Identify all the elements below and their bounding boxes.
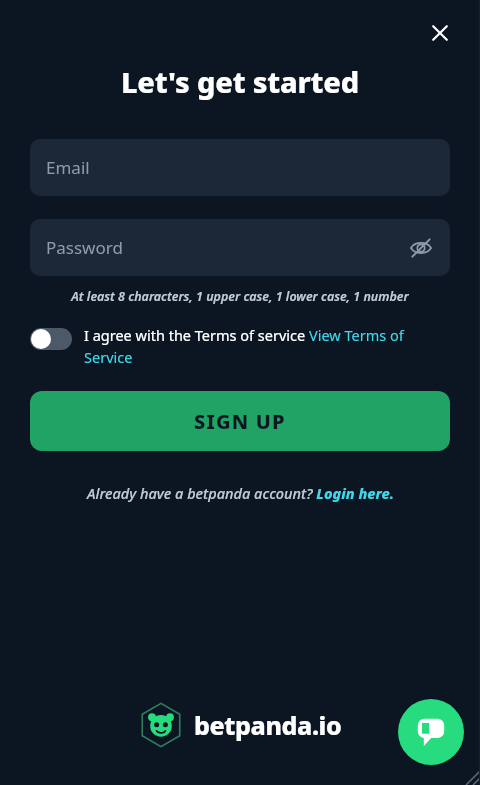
button[interactable]: Show password (404, 231, 438, 265)
button[interactable]: Already have a betpanda account? Login h… (0, 483, 480, 503)
staticText: Password (46, 236, 123, 259)
button[interactable]: Close (422, 15, 458, 51)
button[interactable]: I agree with the Terms of service View T… (84, 325, 450, 367)
button[interactable]: betpanda.io (138, 702, 342, 748)
button[interactable]: Password (30, 219, 450, 276)
button[interactable]: SIGN UP (30, 391, 450, 451)
staticText: SIGN UP (194, 408, 286, 435)
button[interactable]: Email (30, 139, 450, 196)
staticText: Already have a betpanda account? Login h… (87, 483, 394, 503)
staticText: betpanda.io (194, 708, 342, 742)
staticText: At least 8 characters, 1 upper case, 1 l… (24, 288, 456, 305)
button[interactable]: Open chat (398, 699, 464, 765)
button[interactable]: Agree to terms toggle (30, 328, 72, 350)
staticText: Let's get started (0, 62, 480, 101)
staticText: Email (46, 156, 90, 179)
